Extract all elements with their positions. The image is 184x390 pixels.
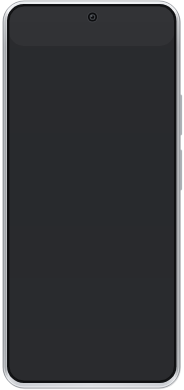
- other: Phone device preview, screen off: [0, 0, 184, 390]
